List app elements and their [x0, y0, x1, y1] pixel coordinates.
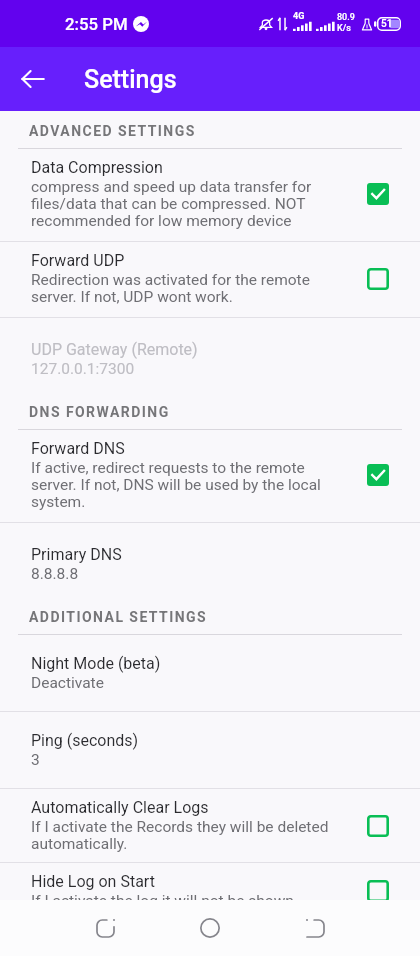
staticText: Night Mode (beta)	[31, 654, 161, 673]
button[interactable]: Back	[293, 906, 337, 950]
button[interactable]: Forward UDP	[0, 242, 420, 317]
staticText: ADVANCED SETTINGS	[29, 123, 196, 139]
button[interactable]: Automatically Clear Logs	[0, 789, 420, 862]
button[interactable]: Night Mode (beta)	[0, 635, 420, 711]
staticText: DNS FORWARDING	[29, 404, 170, 420]
staticText: Settings	[84, 65, 177, 94]
staticText: If active, redirect requests to the remo…	[31, 459, 321, 511]
button[interactable]: Ping (seconds)	[0, 712, 420, 788]
staticText: 8.8.8.8	[31, 565, 79, 583]
staticText: compress and speed up data transfer for …	[31, 178, 312, 230]
button[interactable]: Primary DNS	[0, 523, 420, 600]
staticText: Deactivate	[31, 674, 104, 692]
button[interactable]: Forward DNS	[0, 430, 420, 522]
staticText: Automatically Clear Logs	[31, 798, 209, 817]
staticText: 127.0.0.1:7300	[31, 360, 135, 378]
staticText: Primary DNS	[31, 545, 122, 564]
staticText: 3	[31, 751, 40, 769]
staticText: Forward UDP	[31, 251, 125, 270]
staticText: Ping (seconds)	[31, 731, 139, 750]
staticText: Data Compression	[31, 158, 163, 177]
button[interactable]: UDP Gateway (Remote)	[0, 318, 420, 395]
button[interactable]: Recent apps	[83, 906, 127, 950]
staticText: 80.9	[337, 12, 355, 23]
staticText: Forward DNS	[31, 439, 125, 458]
staticText: K/s	[337, 23, 351, 34]
staticText: 2:55 PM	[65, 14, 128, 34]
staticText: 51	[381, 18, 393, 30]
staticText: 4G	[293, 11, 305, 22]
staticText: If I activate the log it will not be sho…	[31, 892, 294, 910]
staticText: Hide Log on Start	[31, 872, 155, 891]
button[interactable]: Hide Log on Start	[0, 863, 420, 919]
button[interactable]: Data Compression	[0, 149, 420, 241]
staticText: If I activate the Records they will be d…	[31, 818, 329, 853]
staticText: ADDITIONAL SETTINGS	[29, 609, 208, 625]
staticText: UDP Gateway (Remote)	[31, 340, 198, 359]
staticText: Redirection was activated for the remote…	[31, 271, 310, 306]
button[interactable]: Home	[188, 906, 232, 950]
button[interactable]: Back	[15, 61, 51, 97]
